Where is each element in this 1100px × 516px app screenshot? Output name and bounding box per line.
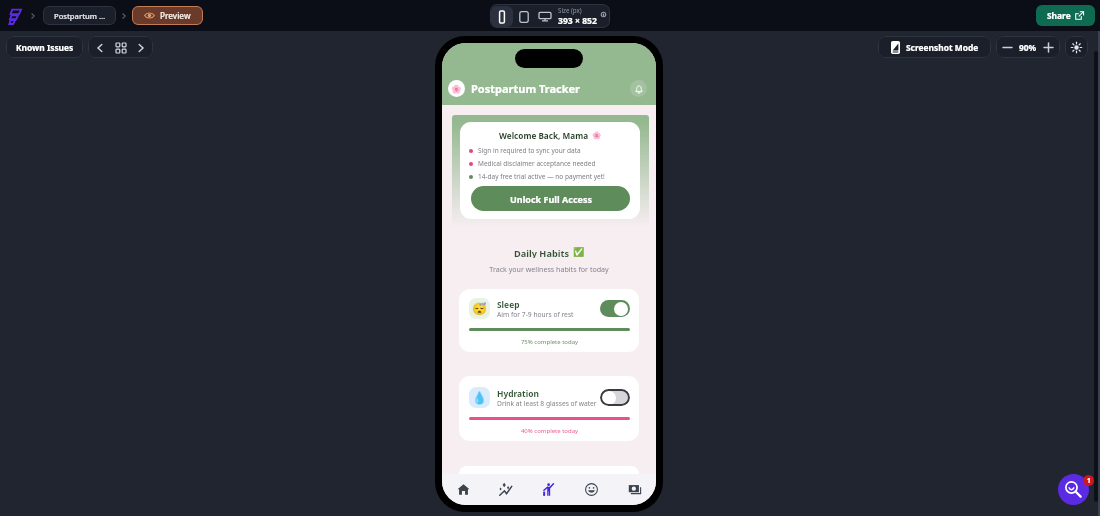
button[interactable]: Home: [8, 6, 23, 26]
staticText: Drink at least 8 glasses of water: [497, 399, 597, 408]
button[interactable]: Activity: [527, 474, 570, 505]
button[interactable]: Tablet size: [513, 6, 534, 27]
staticText: 🌸: [451, 84, 462, 94]
staticText: Track your wellness habits for today: [442, 264, 656, 274]
button[interactable]: Preview: [132, 6, 203, 25]
staticText: Daily Habits: [514, 247, 570, 258]
staticText: Share: [1047, 10, 1071, 21]
button[interactable]: Mood: [570, 474, 613, 505]
button[interactable]: Search: [1058, 474, 1089, 505]
staticText: ✅: [573, 247, 585, 258]
staticText: Preview: [160, 10, 191, 21]
staticText: Postpartum …: [54, 11, 106, 21]
staticText: Medical disclaimer acceptance needed: [478, 159, 596, 168]
staticText: 393 × 852: [558, 15, 597, 27]
staticText: 😴: [472, 302, 487, 316]
button[interactable]: Notifications: [630, 80, 647, 97]
button[interactable]: Toggle off: [600, 389, 630, 406]
button[interactable]: Info: [601, 10, 606, 22]
staticText: Welcome Back, Mama: [499, 130, 589, 141]
staticText: Known Issues: [16, 42, 74, 53]
button[interactable]: Zoom in: [1041, 37, 1056, 58]
button[interactable]: Known Issues: [6, 36, 83, 58]
staticText: Aim for 7-9 hours of rest: [497, 310, 574, 319]
staticText: 14-day free trial active — no payment ye…: [478, 172, 605, 181]
staticText: Sleep: [497, 299, 520, 310]
staticText: Sign in required to sync your data: [478, 146, 581, 155]
button[interactable]: Zoom out: [1000, 37, 1015, 58]
staticText: Postpartum Tracker: [471, 81, 581, 96]
button[interactable]: 💧: [459, 376, 639, 441]
button[interactable]: Previous: [91, 37, 109, 58]
staticText: 75% complete today: [469, 338, 630, 346]
button[interactable]: 😴: [459, 289, 639, 352]
button[interactable]: Phone size: [491, 6, 513, 27]
staticText: 40% complete today: [469, 427, 630, 435]
button[interactable]: Share: [1036, 5, 1095, 26]
button[interactable]: Grid view: [112, 37, 130, 58]
button[interactable]: Gallery: [613, 474, 656, 505]
staticText: 💧: [472, 391, 487, 405]
button[interactable]: Home: [442, 474, 484, 505]
staticText: 90%: [1019, 42, 1037, 53]
button[interactable]: Toggle on: [600, 300, 630, 317]
staticText: 🌸: [592, 131, 602, 140]
button[interactable]: Insights: [484, 474, 527, 505]
button[interactable]: Theme: [1065, 36, 1088, 58]
button[interactable]: Unlock Full Access: [471, 186, 630, 211]
staticText: Unlock Full Access: [510, 193, 592, 205]
staticText: Size (px): [558, 6, 582, 14]
button[interactable]: Postpartum …: [43, 6, 116, 25]
button[interactable]: Screenshot Mode: [878, 36, 991, 58]
staticText: 1: [1087, 476, 1091, 485]
staticText: Screenshot Mode: [906, 42, 979, 53]
staticText: Hydration: [497, 388, 539, 399]
button[interactable]: Desktop size: [534, 6, 555, 27]
button[interactable]: Next: [132, 37, 150, 58]
